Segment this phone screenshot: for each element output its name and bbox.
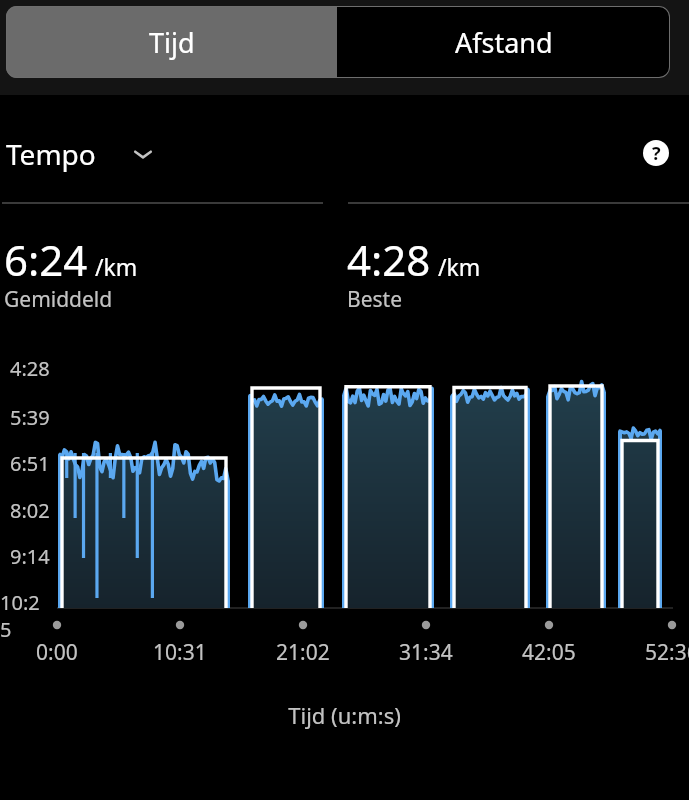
staticText: 31:34 — [399, 638, 453, 667]
staticText: ? — [652, 141, 661, 166]
staticText: Tempo — [6, 135, 96, 173]
button[interactable]: 6:24 — [4, 225, 334, 325]
staticText: 21:02 — [276, 638, 330, 667]
staticText: 6:51 — [10, 450, 50, 477]
button[interactable]: 4:28 — [347, 225, 677, 325]
staticText: Tijd — [149, 24, 195, 61]
staticText: Gemiddeld — [4, 285, 113, 314]
staticText: 42:05 — [522, 638, 576, 667]
staticText: Afstand — [455, 24, 553, 61]
staticText: /km — [438, 251, 481, 282]
staticText: Beste — [347, 285, 402, 314]
staticText: 52:36 — [645, 638, 689, 667]
staticText: 4:28 — [347, 231, 431, 288]
staticText: /km — [95, 251, 138, 282]
staticText: 10:25 — [0, 589, 50, 643]
staticText: Tijd (u:m:s) — [0, 700, 689, 730]
button[interactable]: Help — [642, 139, 670, 167]
staticText: 8:02 — [10, 497, 50, 524]
staticText: 9:14 — [10, 543, 50, 570]
staticText: 10:31 — [153, 638, 207, 667]
staticText: 5:39 — [10, 404, 50, 431]
staticText: 6:24 — [4, 231, 88, 288]
button[interactable]: Tijd — [6, 6, 337, 78]
staticText: 0:00 — [36, 638, 78, 667]
button[interactable]: Afstand — [337, 6, 670, 78]
button[interactable]: Tempo — [6, 132, 156, 176]
staticText: 4:28 — [10, 355, 50, 382]
